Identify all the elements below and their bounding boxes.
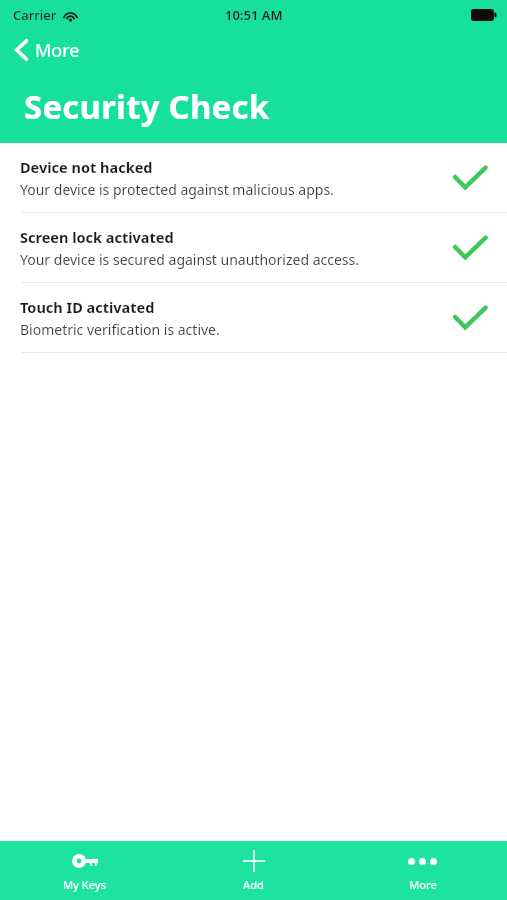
staticText: Your device is secured against unauthori… bbox=[20, 250, 359, 269]
button[interactable]: Device not hacked bbox=[0, 143, 507, 212]
staticText: Carrier bbox=[13, 6, 57, 24]
button[interactable]: My Keys bbox=[0, 843, 169, 898]
staticText: My Keys bbox=[63, 877, 106, 892]
other: Add bbox=[243, 850, 265, 872]
staticText: Screen lock activated bbox=[20, 227, 174, 247]
staticText: 10:51 AM bbox=[225, 6, 283, 24]
button[interactable]: Screen lock activated bbox=[0, 213, 507, 282]
button[interactable]: More bbox=[338, 843, 507, 898]
other: More bbox=[408, 858, 437, 865]
staticText: More bbox=[409, 877, 437, 892]
staticText: Touch ID activated bbox=[20, 297, 155, 317]
staticText: Add bbox=[243, 877, 264, 892]
staticText: Security Check bbox=[24, 84, 270, 129]
staticText: More bbox=[35, 38, 80, 63]
button[interactable]: Touch ID activated bbox=[0, 283, 507, 352]
staticText: Device not hacked bbox=[20, 157, 153, 177]
other: My Keys bbox=[72, 854, 98, 868]
staticText: Your device is protected against malicio… bbox=[20, 180, 334, 199]
button[interactable]: More bbox=[0, 30, 507, 70]
staticText: Biometric verification is active. bbox=[20, 320, 220, 339]
button[interactable]: Add bbox=[169, 843, 338, 898]
